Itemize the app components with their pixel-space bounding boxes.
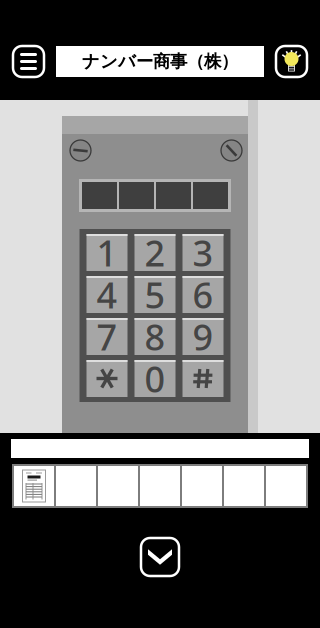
staticText: 2 [144, 229, 165, 276]
staticText: 0 [144, 355, 165, 402]
button[interactable]: Menu [13, 46, 44, 77]
staticText: 6 [192, 271, 213, 318]
staticText: 8 [144, 313, 165, 360]
button[interactable]: Hint [276, 46, 307, 77]
staticText: 5 [144, 271, 165, 318]
button[interactable]: Scroll down [141, 538, 179, 576]
staticText: 1 [96, 229, 117, 276]
staticText: 7 [96, 313, 117, 360]
staticText: 4 [96, 271, 117, 318]
staticText: ナンバー商事（株） [82, 51, 238, 72]
staticText: 3 [192, 229, 213, 276]
staticText: 9 [192, 313, 213, 360]
